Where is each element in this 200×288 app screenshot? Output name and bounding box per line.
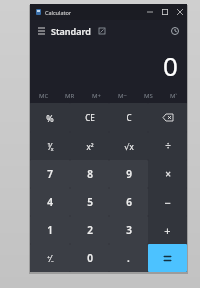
staticText: ÷ bbox=[165, 139, 171, 153]
staticText: x² bbox=[86, 141, 94, 152]
staticText: C bbox=[126, 112, 132, 123]
button[interactable]: 2 bbox=[70, 216, 109, 244]
button[interactable]: Minimize bbox=[142, 4, 157, 20]
staticText: 3 bbox=[126, 223, 132, 237]
button[interactable]: Maximize bbox=[157, 4, 172, 20]
button[interactable]: 6 bbox=[109, 188, 148, 216]
button[interactable]: − bbox=[148, 188, 187, 216]
staticText: × bbox=[165, 167, 171, 181]
button[interactable]: M− bbox=[109, 88, 135, 103]
staticText: 6 bbox=[126, 195, 132, 209]
button[interactable]: . bbox=[109, 244, 148, 272]
button[interactable]: 7 bbox=[30, 160, 70, 188]
staticText: MR bbox=[65, 92, 75, 100]
staticText: 4 bbox=[47, 195, 53, 209]
staticText: M˅ bbox=[170, 92, 178, 100]
button[interactable]: 0 bbox=[70, 244, 109, 272]
button[interactable]: 3 bbox=[109, 216, 148, 244]
button[interactable]: Keep on top bbox=[96, 25, 107, 36]
button[interactable]: + bbox=[148, 216, 187, 244]
staticText: M− bbox=[118, 92, 127, 100]
button[interactable]: MR bbox=[57, 88, 83, 103]
staticText: 2 bbox=[87, 223, 93, 237]
button[interactable]: 1 bbox=[30, 216, 70, 244]
staticText: √x bbox=[124, 141, 134, 152]
staticText: . bbox=[127, 251, 130, 265]
button[interactable]: 4 bbox=[30, 188, 70, 216]
staticText: MS bbox=[144, 92, 153, 100]
staticText: 1 bbox=[47, 223, 53, 237]
button[interactable]: x² bbox=[70, 132, 109, 160]
button[interactable]: Backspace bbox=[148, 103, 187, 132]
button[interactable]: ⅟ₓ bbox=[30, 132, 70, 160]
button[interactable]: MS bbox=[135, 88, 161, 103]
button[interactable]: M˅ bbox=[161, 88, 187, 103]
staticText: CE bbox=[85, 112, 95, 123]
button[interactable]: Equals bbox=[148, 244, 187, 272]
staticText: 5 bbox=[87, 195, 93, 209]
button[interactable]: 9 bbox=[109, 160, 148, 188]
staticText: % bbox=[46, 112, 54, 124]
staticText: 0 bbox=[87, 251, 93, 265]
button[interactable]: Close bbox=[172, 4, 187, 20]
button[interactable]: ⁺⁄₋ bbox=[30, 244, 70, 272]
button[interactable]: History bbox=[167, 23, 183, 39]
staticText: + bbox=[164, 223, 171, 238]
button[interactable]: 5 bbox=[70, 188, 109, 216]
button[interactable]: C bbox=[109, 103, 148, 132]
staticText: ⅟ₓ bbox=[47, 141, 54, 152]
button[interactable]: Menu bbox=[35, 24, 48, 37]
button[interactable]: √x bbox=[109, 132, 148, 160]
staticText: MC bbox=[39, 92, 49, 100]
staticText: Calculator bbox=[45, 9, 72, 16]
button[interactable]: 8 bbox=[70, 160, 109, 188]
staticText: Standard bbox=[51, 25, 91, 37]
staticText: 9 bbox=[126, 167, 132, 181]
button[interactable]: % bbox=[30, 103, 70, 132]
staticText: 0 bbox=[163, 48, 178, 83]
staticText: − bbox=[164, 195, 171, 210]
button[interactable]: CE bbox=[70, 103, 109, 132]
button[interactable]: M+ bbox=[83, 88, 109, 103]
staticText: 8 bbox=[87, 167, 93, 181]
staticText: ⁺⁄₋ bbox=[47, 253, 54, 264]
staticText: M+ bbox=[92, 92, 101, 100]
button[interactable]: ÷ bbox=[148, 132, 187, 160]
staticText: 7 bbox=[47, 167, 53, 181]
button[interactable]: × bbox=[148, 160, 187, 188]
button[interactable]: MC bbox=[30, 88, 57, 103]
